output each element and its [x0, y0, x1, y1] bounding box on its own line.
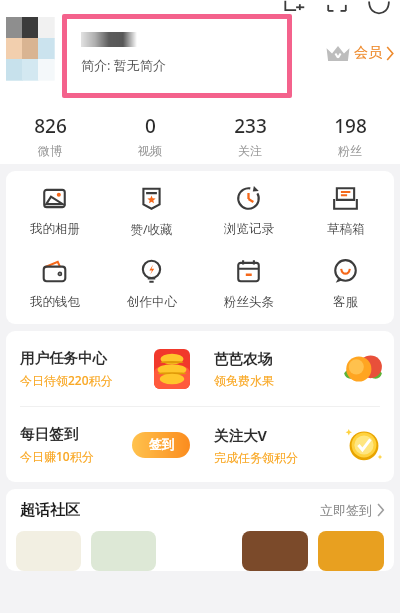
staticText: 浏览记录 — [224, 221, 274, 237]
button[interactable]: 会员 — [325, 42, 394, 64]
staticText: 完成任务领积分 — [214, 450, 298, 465]
staticText: 233 — [234, 113, 267, 139]
button[interactable]: 简介: 暂无简介 — [67, 19, 287, 93]
staticText: 今日赚10积分 — [20, 448, 94, 464]
button[interactable]: Super topic — [16, 531, 81, 571]
button[interactable]: 198 — [300, 106, 400, 164]
staticText: 关注大V — [214, 425, 267, 445]
button[interactable]: 签到 — [132, 432, 190, 458]
staticText: 粉丝头条 — [224, 294, 274, 310]
button[interactable]: 立即签到 — [320, 502, 384, 518]
staticText: 每日签到 — [20, 425, 78, 443]
button[interactable]: 826 — [0, 106, 100, 164]
staticText: 简介: 暂无简介 — [81, 56, 166, 74]
button[interactable]: 芭芭农场 — [214, 331, 384, 406]
staticText: 芭芭农场 — [214, 350, 272, 368]
staticText: 创作中心 — [127, 294, 177, 310]
button[interactable]: 233 — [200, 106, 300, 164]
staticText: 领免费水果 — [214, 373, 274, 388]
staticText: 客服 — [333, 294, 358, 310]
button[interactable]: Super topic — [242, 531, 308, 571]
staticText: 用户任务中心 — [20, 349, 107, 367]
staticText: 视频 — [138, 143, 162, 158]
button[interactable]: Super topic — [91, 531, 156, 571]
staticText: 0 — [145, 113, 156, 139]
button[interactable]: 我的相册 — [6, 185, 103, 237]
staticText: 签到 — [149, 437, 174, 453]
button[interactable]: 我的钱包 — [6, 258, 103, 310]
button[interactable]: Super topic — [318, 531, 384, 571]
button[interactable]: 草稿箱 — [297, 185, 394, 237]
button[interactable]: 赞/收藏 — [103, 185, 200, 238]
button[interactable]: 用户任务中心 — [20, 331, 190, 406]
staticText: 粉丝 — [338, 143, 362, 158]
button[interactable]: 客服 — [297, 258, 394, 310]
staticText: 微博 — [38, 143, 62, 158]
button[interactable]: Avatar — [6, 17, 54, 80]
staticText: 立即签到 — [320, 502, 372, 518]
staticText: 我的相册 — [30, 221, 80, 237]
button[interactable]: 创作中心 — [103, 258, 200, 310]
button[interactable]: 0 — [100, 106, 200, 164]
button[interactable]: 浏览记录 — [200, 185, 297, 237]
button[interactable]: 每日签到 — [20, 407, 190, 482]
staticText: 关注 — [238, 143, 262, 158]
staticText: 我的钱包 — [30, 294, 80, 310]
staticText: 198 — [334, 113, 367, 139]
button[interactable]: Add friend — [284, 0, 306, 14]
button[interactable]: 粉丝头条 — [200, 258, 297, 310]
staticText: 826 — [34, 113, 67, 139]
staticText: 今日待领220积分 — [20, 372, 113, 388]
staticText: 赞/收藏 — [130, 221, 173, 238]
staticText: 会员 — [354, 44, 382, 62]
staticText: 草稿箱 — [327, 221, 365, 237]
staticText: 超话社区 — [20, 501, 80, 520]
button[interactable]: 关注大V — [214, 407, 384, 482]
button[interactable]: Scan — [326, 0, 348, 14]
button[interactable]: Messages — [368, 0, 390, 14]
